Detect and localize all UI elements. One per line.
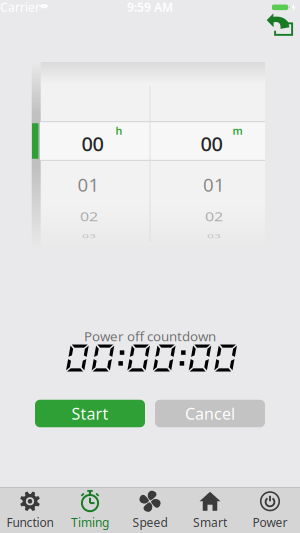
staticText: 9:59 AM — [127, 0, 173, 15]
button[interactable]: Speed — [120, 488, 180, 533]
button[interactable]: Timing — [60, 488, 120, 533]
staticText: 02 — [205, 206, 223, 227]
button[interactable]: Cancel — [155, 400, 265, 427]
button[interactable]: Start — [35, 400, 145, 427]
button[interactable]: Function — [0, 488, 60, 533]
staticText: Speed — [132, 514, 167, 530]
staticText: 03 — [82, 228, 96, 244]
staticText: 01 — [203, 173, 225, 197]
staticText: Cancel — [185, 403, 235, 424]
staticText: Function — [6, 514, 53, 530]
staticText: Power off countdown — [84, 327, 216, 345]
staticText: Smart — [193, 514, 227, 530]
button[interactable]: Smart — [180, 488, 240, 533]
staticText: 03 — [207, 228, 221, 244]
staticText: Start — [71, 403, 108, 424]
staticText: h — [115, 123, 122, 138]
staticText: 02 — [80, 206, 98, 227]
button[interactable] — [266, 11, 296, 37]
staticText: 00 — [81, 130, 103, 157]
staticText: Power — [252, 514, 287, 530]
staticText: Carrier — [0, 0, 40, 15]
button[interactable]: Power — [240, 488, 300, 533]
staticText: m — [232, 123, 242, 138]
staticText: 00 — [200, 130, 222, 157]
staticText: Timing — [71, 514, 109, 530]
staticText: 01 — [77, 173, 99, 197]
